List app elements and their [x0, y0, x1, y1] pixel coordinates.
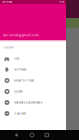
button[interactable]: Recents: [45, 133, 49, 137]
staticText: O aplikaci: [14, 112, 26, 115]
staticText: Auto: [14, 57, 20, 60]
staticText: 14:08: [59, 1, 64, 3]
staticText: Obecné: [14, 90, 22, 93]
staticText: Nastavení: [4, 46, 14, 49]
staticText: Nerušit při řízení: [14, 79, 34, 82]
button[interactable]: Home: [30, 133, 34, 137]
staticText: Nápověda a zpětná vazba: [14, 101, 42, 104]
button[interactable]: O aplikaci: [0, 108, 66, 119]
button[interactable]: Back: [14, 132, 19, 137]
button[interactable]: Auto: [0, 53, 66, 64]
button[interactable]: Notifikace: [0, 64, 66, 75]
staticText: Notifikace: [14, 68, 26, 71]
button[interactable]: Nápověda a zpětná vazba: [0, 97, 66, 108]
button[interactable]: Obecné: [0, 86, 66, 97]
button[interactable]: Nerušit při řízení: [0, 75, 66, 86]
staticText: jan.novak@gmail.com: [3, 33, 39, 37]
staticText: Jan Novák: [2, 1, 12, 3]
